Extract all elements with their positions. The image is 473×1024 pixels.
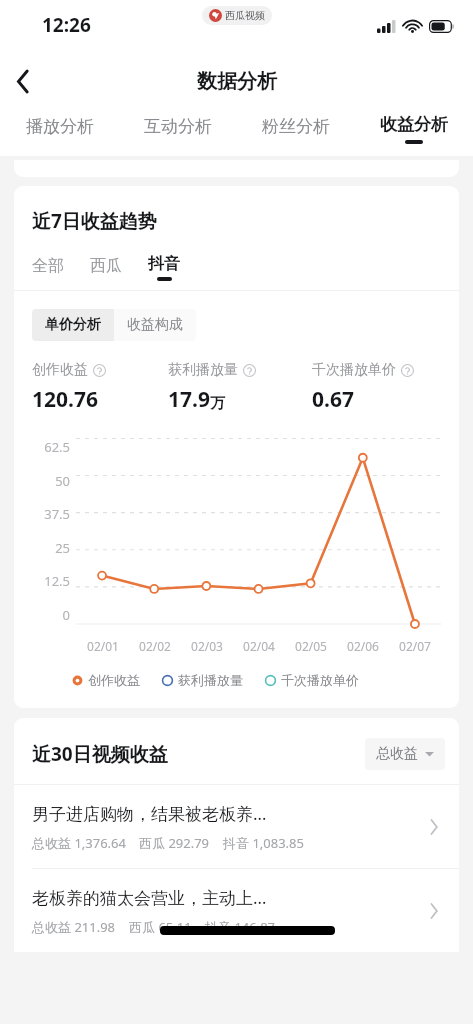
button[interactable]: 老板养的猫太会营业，主动上… — [14, 869, 459, 952]
staticText: 千次播放单价 — [312, 361, 396, 379]
other: 详情 — [423, 816, 445, 838]
staticText: 02/06 — [347, 638, 379, 654]
staticText: 千次播放单价 — [281, 672, 359, 688]
staticText: 互动分析 — [144, 116, 212, 137]
staticText: 粉丝分析 — [262, 116, 330, 137]
button[interactable]: Back — [0, 58, 46, 104]
button[interactable]: 抖音 — [148, 254, 206, 281]
button[interactable]: 千次播放单价 — [265, 672, 359, 688]
staticText: 0 — [62, 606, 70, 624]
staticText: 50 — [55, 472, 70, 490]
button[interactable]: 男子进店购物，结果被老板养… — [14, 785, 459, 868]
staticText: 播放分析 — [26, 116, 94, 137]
button[interactable]: 创作收益 — [72, 672, 140, 688]
button[interactable]: 总收益 — [365, 738, 445, 770]
button[interactable]: 收益构成 — [114, 309, 196, 341]
staticText: 老板养的猫太会营业，主动上… — [32, 886, 267, 909]
other: 详情 — [423, 900, 445, 922]
button[interactable]: 全部 — [32, 256, 90, 279]
staticText: 西瓜视频 — [225, 9, 265, 22]
staticText: 02/02 — [139, 638, 171, 654]
staticText: 02/05 — [295, 638, 327, 654]
staticText: 万 — [210, 394, 225, 413]
button[interactable]: 说明 — [242, 363, 256, 377]
staticText: 02/01 — [87, 638, 119, 654]
button[interactable]: 互动分析 — [119, 106, 237, 152]
staticText: 总收益 — [376, 745, 418, 763]
staticText: 总收益 1,376.64 — [32, 834, 126, 852]
staticText: 37.5 — [44, 505, 70, 523]
staticText: 西瓜 65.11 — [129, 918, 192, 936]
button[interactable]: 粉丝分析 — [237, 106, 355, 152]
staticText: 收益构成 — [127, 316, 183, 334]
staticText: 抖音 146.87 — [205, 918, 276, 936]
staticText: 收益分析 — [380, 114, 448, 135]
staticText: 17.9 — [168, 385, 210, 414]
staticText: 单价分析 — [45, 316, 101, 334]
staticText: 西瓜 — [90, 256, 122, 276]
staticText: 抖音 — [148, 254, 180, 274]
staticText: 获利播放量 — [178, 672, 243, 688]
staticText: 创作收益 — [32, 361, 88, 379]
button[interactable]: 说明 — [400, 363, 414, 377]
button[interactable]: 收益分析 — [355, 106, 473, 152]
staticText: 120.76 — [32, 385, 98, 414]
staticText: 近7日收益趋势 — [32, 208, 157, 234]
staticText: 西瓜 292.79 — [139, 834, 210, 852]
button[interactable]: 播放分析 — [0, 106, 119, 152]
staticText: 抖音 1,083.85 — [223, 834, 304, 852]
button[interactable]: 说明 — [92, 363, 106, 377]
staticText: 25 — [55, 539, 70, 557]
button[interactable]: 西瓜 — [90, 256, 148, 279]
staticText: 数据分析 — [197, 69, 277, 94]
button[interactable]: 获利播放量 — [162, 672, 243, 688]
button[interactable]: 单价分析 — [32, 309, 114, 341]
staticText: 总收益 211.98 — [32, 918, 116, 936]
staticText: 获利播放量 — [168, 361, 238, 379]
staticText: 12:26 — [42, 12, 91, 38]
staticText: 02/07 — [399, 638, 431, 654]
staticText: 02/03 — [191, 638, 223, 654]
staticText: 男子进店购物，结果被老板养… — [32, 802, 267, 825]
staticText: 0.67 — [312, 385, 354, 414]
staticText: 62.5 — [44, 438, 70, 456]
staticText: 创作收益 — [88, 672, 140, 688]
staticText: 02/04 — [243, 638, 275, 654]
staticText: 全部 — [32, 256, 64, 276]
staticText: 近30日视频收益 — [32, 741, 168, 767]
staticText: 12.5 — [44, 572, 70, 590]
